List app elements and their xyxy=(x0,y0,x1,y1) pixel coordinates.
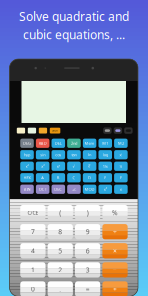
button[interactable] xyxy=(17,128,25,133)
staticText: DEG xyxy=(23,141,31,146)
staticText: C xyxy=(72,175,75,180)
button[interactable]: ( xyxy=(48,205,73,220)
staticText: √ xyxy=(72,164,75,168)
button[interactable]: 3 xyxy=(75,262,100,277)
staticText: B xyxy=(57,175,60,180)
button[interactable]: DEC xyxy=(51,185,65,194)
button[interactable]: C xyxy=(67,173,81,182)
button[interactable]: ∛ xyxy=(83,162,96,171)
staticText: tan xyxy=(71,152,76,157)
button[interactable]: SHIFT xyxy=(50,128,60,133)
staticText: x² xyxy=(25,164,28,169)
button[interactable]: B xyxy=(51,173,65,182)
button[interactable]: 5 xyxy=(48,243,73,258)
button[interactable]: x! xyxy=(114,150,128,159)
staticText: BIN xyxy=(23,187,30,192)
button[interactable]: − xyxy=(102,262,128,277)
staticText: D xyxy=(88,175,91,180)
button[interactable]: tan xyxy=(67,150,81,159)
staticText: ln xyxy=(88,152,91,157)
button[interactable]: M1 xyxy=(98,139,112,148)
staticText: x³ xyxy=(104,187,107,192)
button[interactable]: Mode xyxy=(103,127,112,134)
button[interactable]: π xyxy=(114,162,128,171)
button[interactable]: x³ xyxy=(36,162,49,171)
staticText: log xyxy=(103,152,108,157)
staticText: sin xyxy=(40,152,45,157)
staticText: − xyxy=(113,265,117,274)
button[interactable]: = xyxy=(75,281,100,296)
staticText: M1 xyxy=(102,141,108,146)
button[interactable]: √ xyxy=(67,162,81,171)
button[interactable]: DEL xyxy=(51,139,65,148)
button[interactable]: e xyxy=(114,185,128,194)
button[interactable]: +/- xyxy=(67,185,81,194)
button[interactable]: hyp xyxy=(20,150,34,159)
button[interactable]: RAD xyxy=(36,139,49,148)
button[interactable]: 8 xyxy=(48,224,73,239)
button[interactable]: E xyxy=(98,173,112,182)
button[interactable]: ln xyxy=(83,150,96,159)
button[interactable]: 1/x xyxy=(98,162,112,171)
button[interactable]: DEG xyxy=(20,139,34,148)
staticText: × xyxy=(113,246,117,255)
button[interactable] xyxy=(39,128,47,133)
staticText: 6 xyxy=(86,246,90,255)
staticText: RAD xyxy=(39,141,47,146)
button[interactable]: % xyxy=(102,205,128,220)
staticText: 1 xyxy=(31,265,35,274)
button[interactable]: Mem xyxy=(83,139,96,148)
staticText: 7 xyxy=(31,227,35,236)
button[interactable]: xʸ xyxy=(51,162,65,171)
staticText: SHIFT xyxy=(52,129,58,132)
staticText: hyp xyxy=(24,152,30,157)
button[interactable]: OCT xyxy=(36,185,49,194)
staticText: E xyxy=(104,175,106,180)
staticText: DEC xyxy=(54,187,62,192)
button[interactable]: sin xyxy=(36,150,49,159)
button[interactable] xyxy=(28,128,36,133)
button[interactable]: F xyxy=(114,173,128,182)
button[interactable]: 9 xyxy=(75,224,100,239)
button[interactable]: Mode xyxy=(124,127,133,134)
staticText: ) xyxy=(87,208,89,217)
staticText: HEX xyxy=(23,175,30,180)
staticText: 2 xyxy=(58,265,62,274)
button[interactable]: log xyxy=(98,150,112,159)
button[interactable]: 4 xyxy=(20,243,46,258)
staticText: C/CE xyxy=(27,209,38,216)
button[interactable]: + xyxy=(102,281,128,296)
staticText: ∛ xyxy=(88,164,91,168)
button[interactable]: 2nd xyxy=(67,139,81,148)
button[interactable]: BIN xyxy=(20,185,34,194)
staticText: 2nd xyxy=(71,141,77,146)
button[interactable]: cos xyxy=(51,150,65,159)
button[interactable]: MOD xyxy=(83,185,96,194)
button[interactable]: . xyxy=(48,281,73,296)
staticText: = xyxy=(86,285,90,293)
button[interactable]: M2 xyxy=(114,139,128,148)
button[interactable]: A xyxy=(36,173,49,182)
button[interactable]: 7 xyxy=(20,224,46,239)
button[interactable]: x³ xyxy=(98,185,112,194)
staticText: OCT xyxy=(39,187,47,192)
button[interactable]: Mode xyxy=(114,127,122,134)
button[interactable]: D xyxy=(83,173,96,182)
button[interactable]: × xyxy=(102,243,128,258)
staticText: 9 xyxy=(86,227,90,236)
staticText: % xyxy=(112,208,118,217)
button[interactable]: 0 xyxy=(20,281,46,296)
staticText: cos xyxy=(55,152,61,157)
button[interactable]: x² xyxy=(20,162,34,171)
staticText: x³ xyxy=(41,164,44,169)
button[interactable]: 1 xyxy=(20,262,46,277)
staticText: π xyxy=(119,164,122,169)
button[interactable]: 2 xyxy=(48,262,73,277)
button[interactable]: 6 xyxy=(75,243,100,258)
button[interactable]: ) xyxy=(75,205,100,220)
button[interactable]: C/CE xyxy=(20,205,46,220)
button[interactable]: ÷ xyxy=(102,224,128,239)
staticText: Mem xyxy=(85,141,95,146)
staticText: F xyxy=(120,175,122,180)
button[interactable]: HEX xyxy=(20,173,34,182)
